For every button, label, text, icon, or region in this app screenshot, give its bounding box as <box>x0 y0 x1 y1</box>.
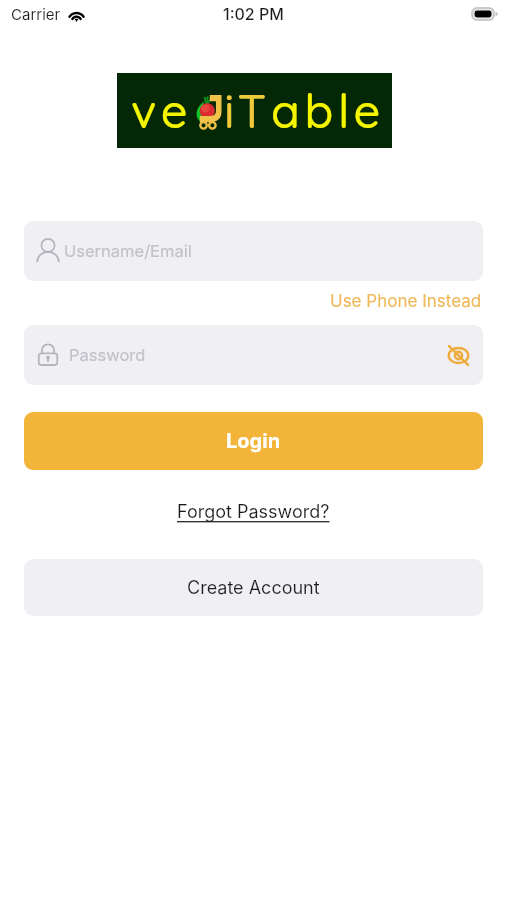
staticText: Create Account <box>187 577 320 599</box>
staticText: ve <box>131 81 193 140</box>
staticText: Forgot Password? <box>177 501 330 523</box>
button[interactable]: Password <box>24 325 483 385</box>
staticText: Login <box>226 429 281 453</box>
button[interactable]: Create Account <box>24 559 483 616</box>
staticText: able <box>271 81 385 140</box>
button[interactable]: Login <box>24 412 483 470</box>
button[interactable]: Forgot Password? <box>177 501 330 523</box>
staticText: Username/Email <box>64 241 192 261</box>
staticText: 1:02 PM <box>223 4 284 23</box>
staticText: Use Phone Instead <box>330 291 482 312</box>
staticText: Carrier <box>11 5 61 23</box>
button[interactable]: Username/Email <box>24 221 483 281</box>
button[interactable]: Use Phone Instead <box>330 291 482 312</box>
staticText: iT <box>224 81 271 140</box>
staticText: Password <box>69 345 146 365</box>
button[interactable]: Show password <box>445 342 471 368</box>
